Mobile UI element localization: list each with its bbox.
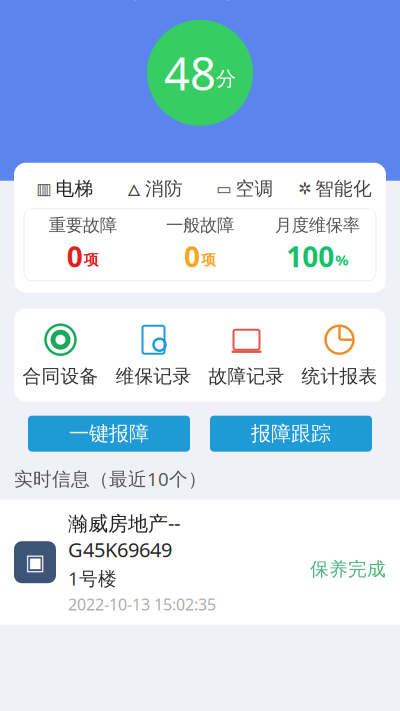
- button[interactable]: 报障跟踪: [210, 416, 372, 452]
- button[interactable]: 一键报障: [28, 416, 190, 452]
- staticText: 故障记录: [208, 365, 284, 388]
- staticText: 2022-10-13 15:02:35: [68, 593, 216, 615]
- staticText: %: [335, 250, 348, 270]
- staticText: 项: [84, 251, 99, 269]
- staticText: 一键报障: [69, 421, 149, 446]
- staticText: ▥: [36, 180, 51, 198]
- staticText: 🜂: [127, 173, 141, 205]
- staticText: 楼宇健康指数: [125, 0, 275, 4]
- button[interactable]: ▭: [200, 177, 290, 201]
- staticText: 重要故障: [49, 214, 117, 236]
- button[interactable]: 统计报表: [293, 323, 386, 388]
- button[interactable]: ▣: [0, 500, 400, 625]
- staticText: 保养完成: [310, 558, 386, 581]
- staticText: 0: [67, 238, 83, 275]
- staticText: 0: [184, 238, 200, 275]
- staticText: 48: [164, 43, 216, 103]
- staticText: 瀚威房地产--G45K69649: [68, 510, 180, 563]
- staticText: 合同设备: [22, 365, 98, 388]
- staticText: 1号楼: [68, 566, 117, 591]
- staticText: 电梯: [55, 177, 93, 200]
- staticText: 分: [216, 66, 236, 91]
- staticText: 空调: [235, 177, 273, 200]
- button[interactable]: 🜂: [110, 177, 200, 201]
- button[interactable]: ✲: [290, 177, 380, 201]
- staticText: 月度维保率: [275, 214, 360, 236]
- staticText: 一般故障: [166, 214, 234, 236]
- staticText: 报障跟踪: [251, 421, 331, 446]
- staticText: 维保记录: [115, 365, 191, 388]
- staticText: 消防: [145, 177, 183, 200]
- staticText: 智能化: [315, 177, 372, 200]
- staticText: ▣: [25, 550, 45, 574]
- button[interactable]: 故障记录: [200, 323, 293, 388]
- staticText: 项: [201, 251, 216, 269]
- staticText: ▭: [216, 180, 231, 198]
- staticText: 100: [286, 238, 334, 275]
- staticText: 实时信息（最近10个）: [14, 466, 207, 491]
- button[interactable]: ▥: [20, 177, 110, 201]
- staticText: 统计报表: [301, 365, 377, 388]
- staticText: ✲: [298, 180, 311, 198]
- button[interactable]: 维保记录: [107, 323, 200, 388]
- button[interactable]: 合同设备: [14, 323, 107, 388]
